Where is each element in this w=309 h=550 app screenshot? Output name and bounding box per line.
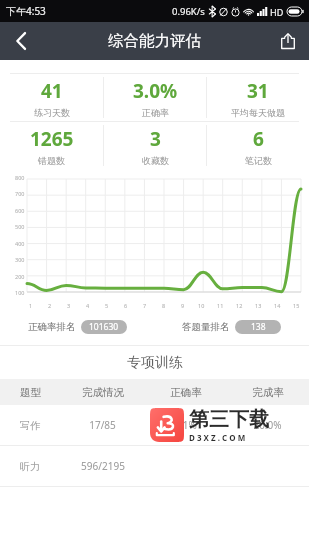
staticText: 13 — [255, 302, 262, 309]
staticText: D 3 X Z . C O M — [189, 432, 246, 443]
button[interactable]: Share — [267, 22, 309, 60]
staticText: 400 — [15, 240, 25, 247]
staticText: 3.0% — [133, 78, 178, 104]
staticText: 31 — [247, 78, 269, 104]
staticText: 答题量排名 — [182, 321, 230, 333]
staticText: 收藏数 — [142, 155, 169, 166]
button[interactable]: 41 — [0, 74, 103, 121]
staticText: 596/2195 — [81, 459, 125, 473]
staticText: 听力 — [20, 460, 40, 473]
staticText: 1265 — [30, 126, 74, 152]
button[interactable]: 3.0% — [104, 74, 206, 121]
staticText: 题型 — [20, 386, 41, 399]
button[interactable]: 答题量排名 — [154, 320, 309, 334]
staticText: 600 — [15, 207, 25, 214]
staticText: 11 — [217, 302, 224, 309]
staticText: 20.0% — [253, 418, 282, 432]
staticText: 700 — [15, 190, 25, 197]
staticText: 1 — [29, 302, 33, 309]
button[interactable]: 1265 — [0, 122, 103, 169]
staticText: 3 — [67, 302, 71, 309]
staticText: 平均每天做题 — [231, 107, 285, 118]
staticText: 800 — [15, 174, 25, 181]
staticText: 6 — [253, 126, 264, 152]
button[interactable]: Back — [0, 22, 42, 60]
staticText: 200 — [15, 273, 25, 280]
staticText: 正确率 — [170, 386, 202, 399]
staticText: 练习天数 — [34, 107, 70, 118]
button[interactable]: 听力 — [0, 446, 309, 486]
staticText: 300 — [15, 256, 25, 263]
staticText: 101630 — [89, 321, 119, 333]
staticText: 12 — [236, 302, 243, 309]
staticText: 7 — [143, 302, 147, 309]
staticText: 8 — [162, 302, 166, 309]
staticText: 笔记数 — [245, 155, 272, 166]
staticText: HD — [270, 6, 284, 18]
staticText: 41 — [41, 78, 63, 104]
staticText: 0.96K/s — [172, 5, 205, 18]
staticText: 写作 — [20, 419, 40, 432]
staticText: 14 — [274, 302, 281, 309]
staticText: 5 — [105, 302, 109, 309]
staticText: 500 — [15, 223, 25, 230]
button[interactable]: 31 — [207, 74, 309, 121]
staticText: 完成率 — [252, 386, 284, 399]
staticText: 6 — [124, 302, 128, 309]
staticText: 15 — [293, 302, 300, 309]
staticText: 正确率排名 — [28, 321, 76, 333]
staticText: 100 — [15, 289, 25, 296]
button[interactable]: 6 — [207, 122, 309, 169]
staticText: 17/85 — [89, 418, 116, 432]
staticText: 下午4:53 — [6, 4, 46, 18]
staticText: 5.1% — [174, 418, 197, 432]
staticText: 错题数 — [38, 155, 65, 166]
button[interactable]: 写作 — [0, 405, 309, 445]
staticText: 完成情况 — [82, 386, 124, 399]
staticText: 综合能力评估 — [108, 31, 201, 51]
staticText: 10 — [198, 302, 205, 309]
staticText: 3 — [150, 126, 161, 152]
staticText: 4 — [86, 302, 90, 309]
button[interactable]: 正确率排名 — [0, 320, 154, 334]
staticText: 专项训练 — [127, 354, 183, 372]
staticText: 138 — [251, 321, 266, 333]
staticText: 2 — [48, 302, 52, 309]
staticText: 第三下载 — [189, 407, 269, 432]
staticText: 正确率 — [142, 107, 169, 118]
staticText: 9 — [181, 302, 185, 309]
button[interactable]: 3 — [104, 122, 206, 169]
